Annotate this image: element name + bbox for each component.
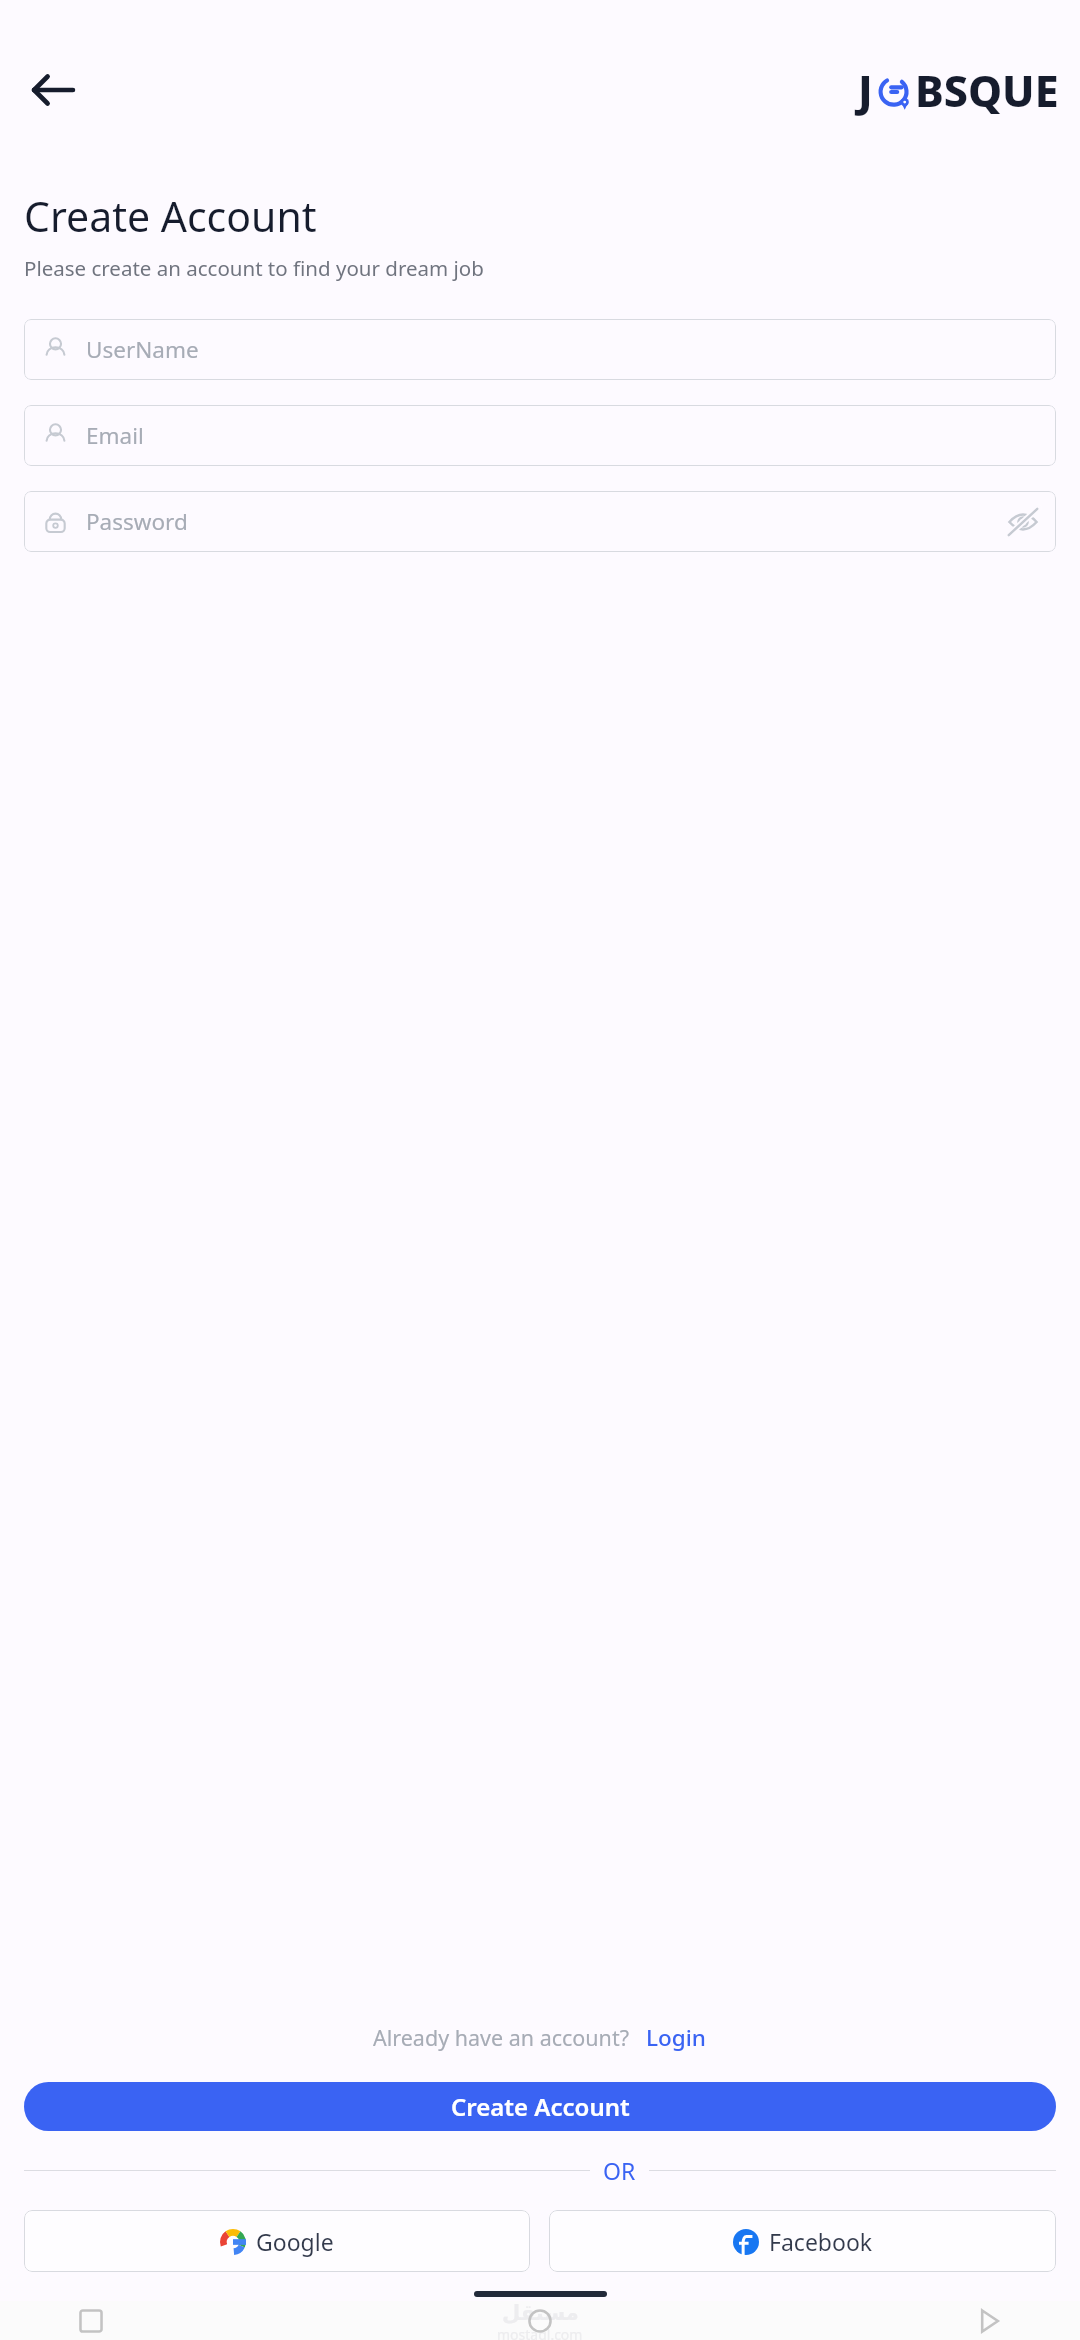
staticText: BSQUE (915, 61, 1059, 120)
button[interactable]: Google (24, 2210, 530, 2272)
staticText: Login (646, 2022, 706, 2053)
button[interactable]: Facebook (549, 2210, 1056, 2272)
button[interactable]: Back (972, 2304, 1006, 2338)
staticText: J (858, 61, 873, 120)
staticText: Password (86, 506, 188, 537)
staticText: Please create an account to find your dr… (24, 254, 484, 282)
staticText: mostaql.com (497, 2325, 583, 2340)
staticText: Email (86, 420, 144, 451)
button[interactable]: Email (24, 405, 1056, 466)
staticText: Create Account (451, 2090, 630, 2123)
button[interactable]: Login (644, 2018, 708, 2057)
staticText: Google (256, 2226, 334, 2257)
button[interactable]: Recent apps (74, 2304, 108, 2338)
button[interactable]: Back (26, 63, 80, 117)
staticText: مستقل (502, 2301, 579, 2325)
staticText: Create Account (24, 188, 317, 244)
button[interactable]: Create Account (24, 2082, 1056, 2131)
button[interactable]: Password (24, 491, 1056, 552)
staticText: OR (603, 2155, 636, 2186)
button[interactable]: Home (523, 2304, 557, 2338)
staticText: Already have an account? (373, 2023, 630, 2052)
button[interactable]: Show password (1006, 505, 1040, 539)
staticText: Facebook (769, 2226, 873, 2257)
staticText: UserName (86, 334, 199, 365)
button[interactable]: UserName (24, 319, 1056, 380)
